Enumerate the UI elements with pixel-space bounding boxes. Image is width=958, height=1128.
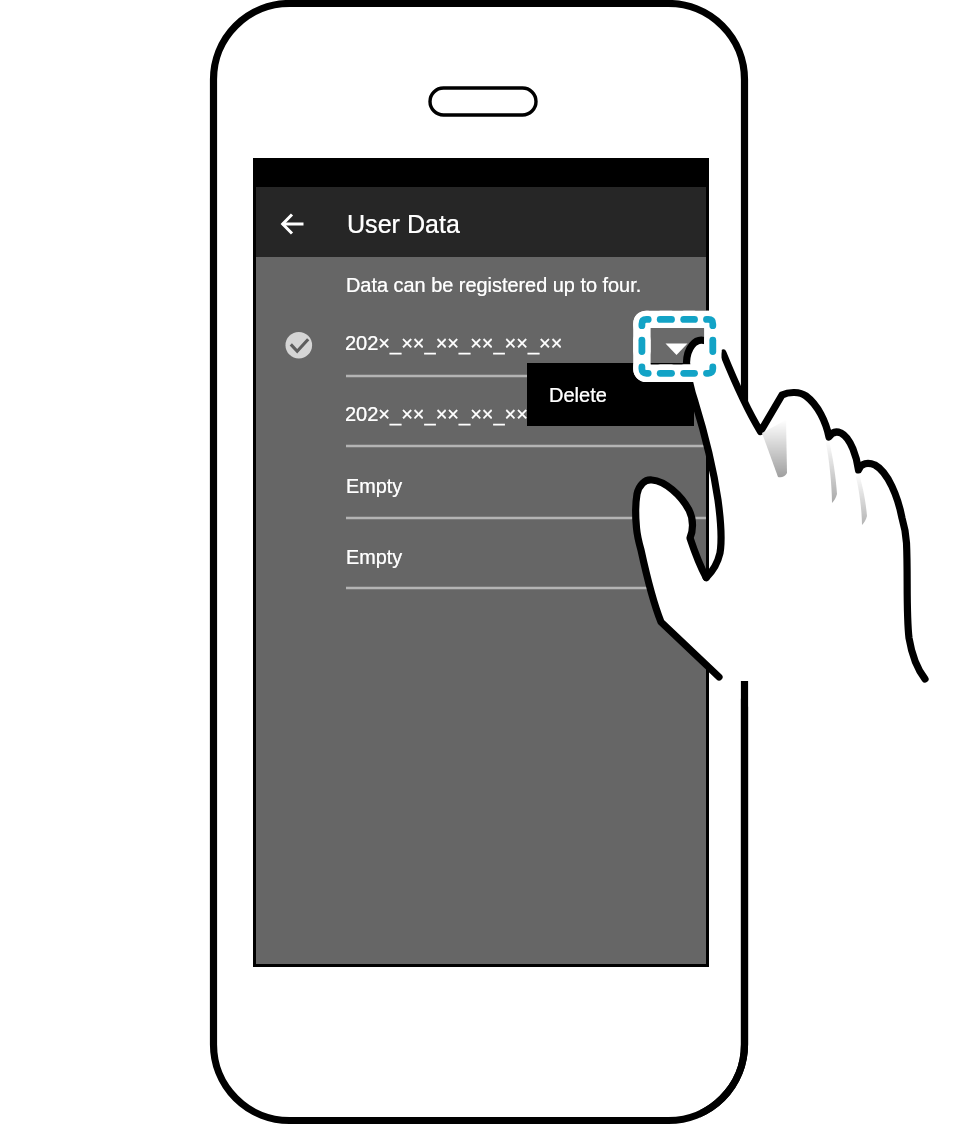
staticText: Data can be registered up to four.: [346, 274, 642, 296]
staticText: Empty: [346, 546, 403, 568]
button[interactable]: [527, 363, 694, 426]
staticText: Empty: [346, 475, 403, 497]
button[interactable]: [280, 322, 706, 376]
staticText: 202×_××_××_××_××_××: [345, 403, 563, 425]
button[interactable]: Back: [274, 206, 310, 242]
button[interactable]: [280, 392, 706, 446]
staticText: User Data: [347, 210, 460, 238]
staticText: 202×_××_××_××_××_××: [345, 332, 563, 354]
staticText: Delete: [549, 384, 607, 406]
button[interactable]: Delete this data: [637, 314, 717, 378]
button[interactable]: [280, 534, 706, 588]
button[interactable]: [280, 464, 706, 518]
